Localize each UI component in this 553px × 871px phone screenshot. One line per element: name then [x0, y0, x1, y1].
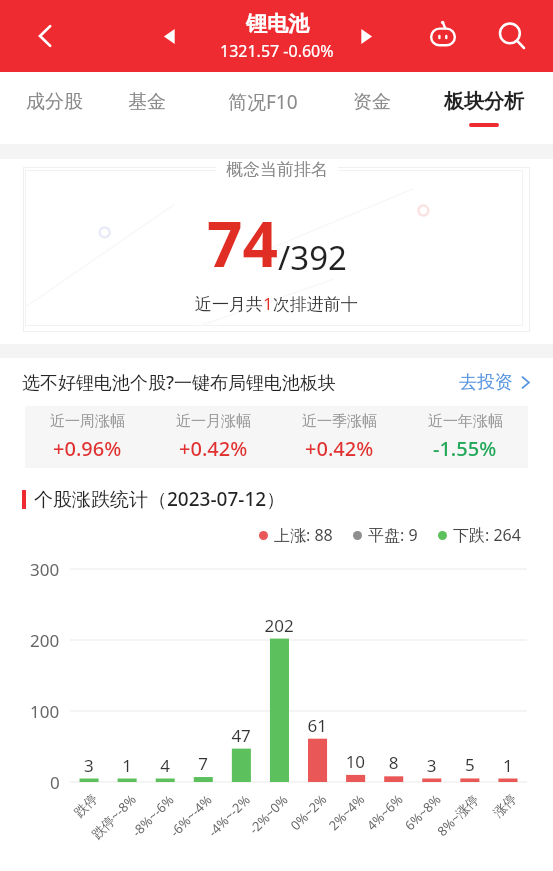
staticText: 个股涨跌统计（2023-07-12）: [34, 486, 286, 512]
staticText: 1321.57 -0.60%: [220, 40, 334, 62]
button[interactable]: 选不好锂电池个股?一键布局锂电池板块: [22, 358, 531, 406]
staticText: 上涨: 88: [274, 524, 333, 546]
button[interactable]: 简况F10: [215, 72, 310, 144]
button[interactable]: Previous sector: [152, 18, 188, 54]
staticText: 74: [207, 201, 278, 285]
staticText: +0.42%: [305, 435, 374, 462]
staticText: 概念当前排名: [226, 159, 328, 180]
staticText: 近一月共1次排进前十: [195, 292, 358, 315]
staticText: +0.96%: [53, 435, 122, 462]
button[interactable]: Search: [489, 13, 535, 59]
staticText: 板块分析: [444, 89, 524, 114]
button[interactable]: 板块分析: [436, 72, 532, 144]
staticText: /392: [278, 235, 347, 280]
staticText: 资金: [353, 90, 391, 114]
button[interactable]: AI assistant: [421, 14, 465, 58]
button[interactable]: Next sector: [347, 18, 383, 54]
button[interactable]: Back: [26, 16, 66, 56]
button[interactable]: 资金: [353, 72, 391, 144]
staticText: 成分股: [26, 90, 83, 114]
staticText: 近一月涨幅: [176, 412, 251, 431]
staticText: 选不好锂电池个股?一键布局锂电池板块: [22, 370, 337, 395]
staticText: 去投资: [459, 371, 513, 394]
staticText: +0.42%: [179, 435, 248, 462]
button[interactable]: 成分股: [26, 72, 83, 144]
staticText: 下跌: 264: [453, 524, 521, 546]
button[interactable]: 基金: [128, 72, 166, 144]
staticText: -1.55%: [433, 435, 497, 462]
staticText: 近一周涨幅: [50, 412, 125, 431]
staticText: 基金: [128, 90, 166, 114]
staticText: 近一年涨幅: [428, 412, 503, 431]
staticText: 近一季涨幅: [302, 412, 377, 431]
staticText: 平盘: 9: [368, 524, 418, 546]
staticText: 锂电池: [246, 11, 309, 37]
staticText: 简况F10: [228, 89, 298, 115]
